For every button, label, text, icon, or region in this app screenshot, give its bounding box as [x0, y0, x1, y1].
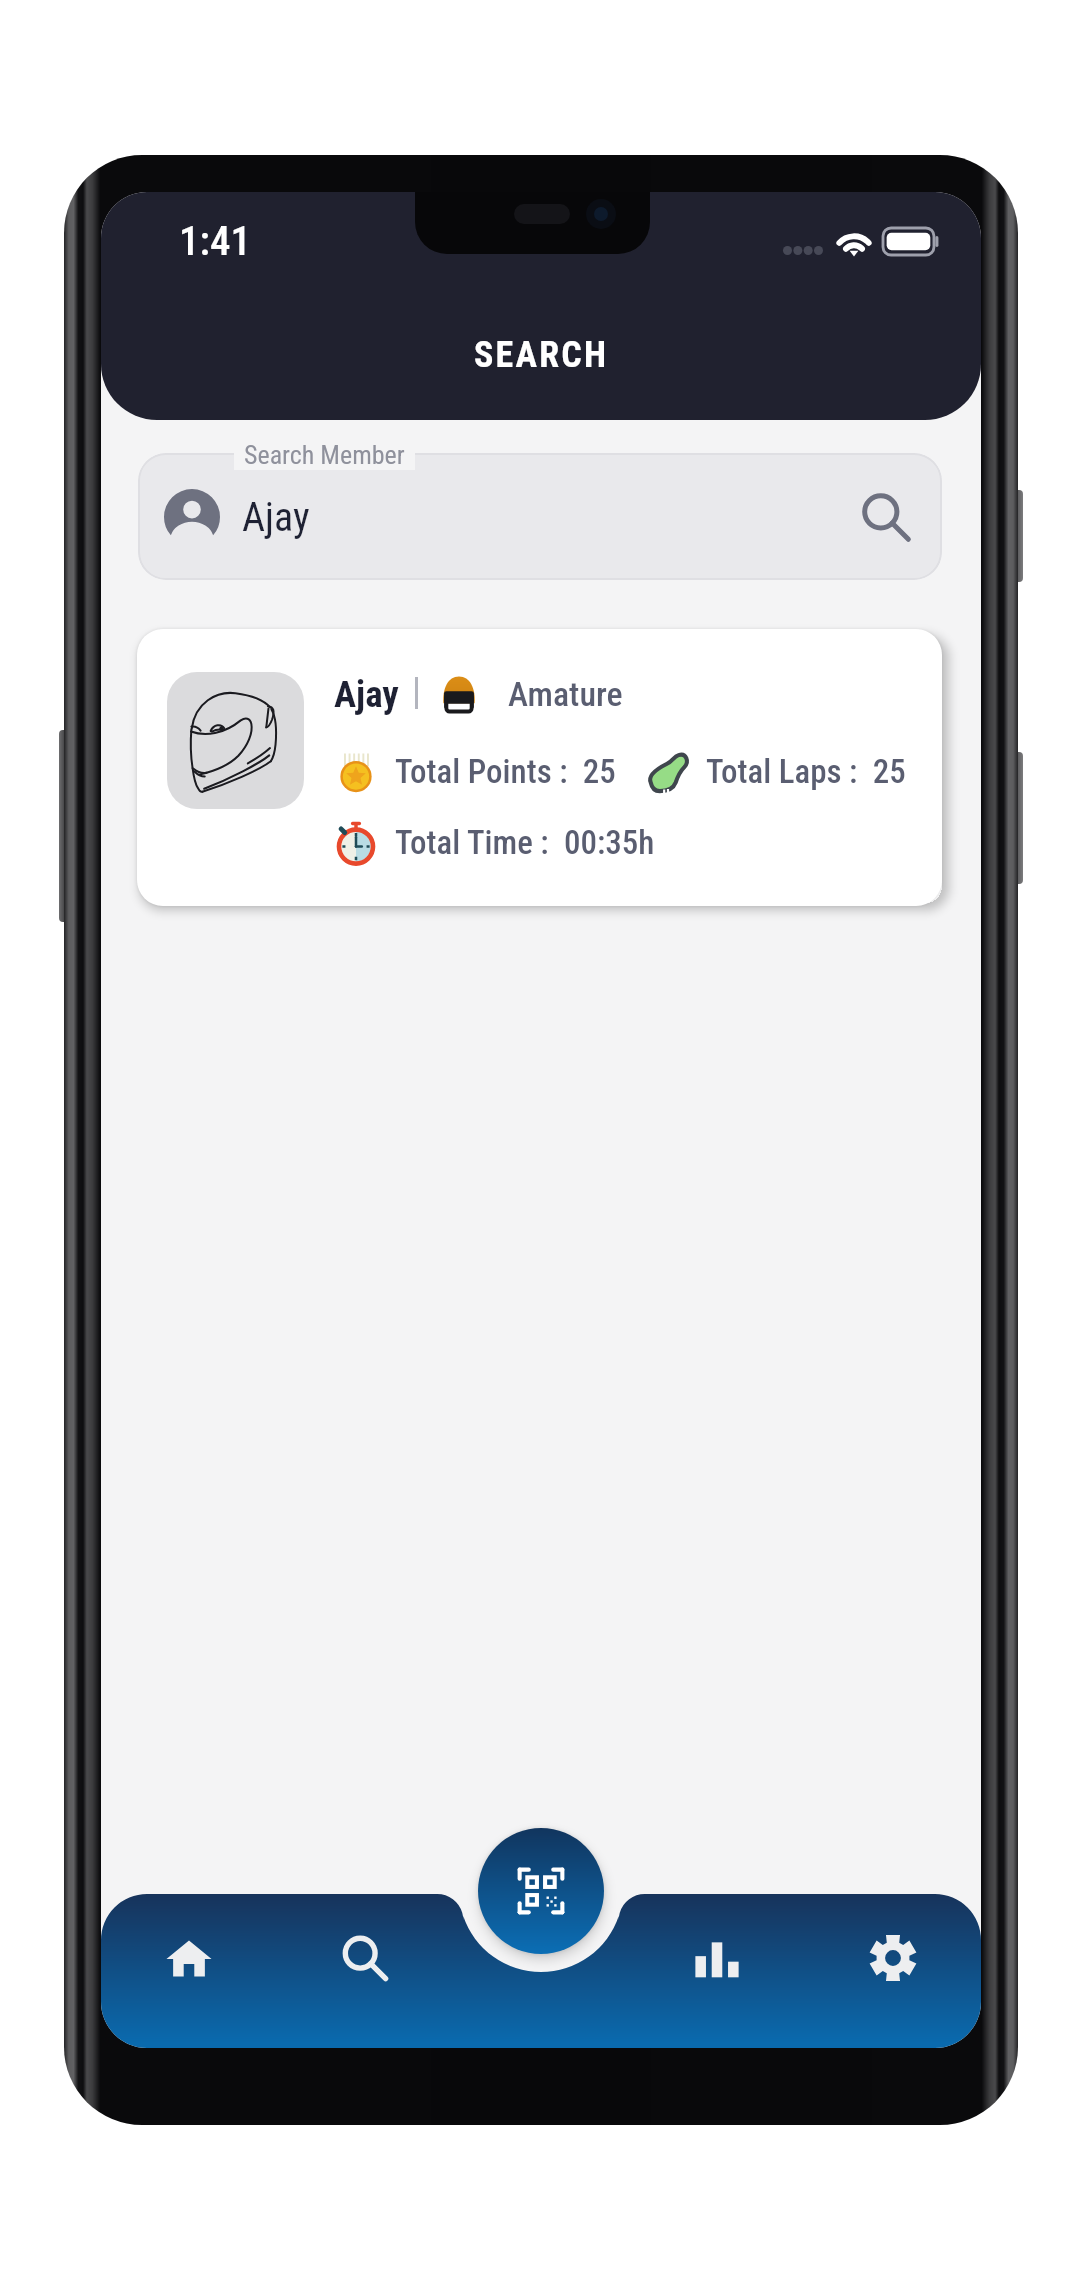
staticText: Total Laps : 25	[706, 752, 906, 791]
button[interactable]: Ajay	[138, 453, 942, 580]
staticText: Ajay	[334, 673, 399, 716]
staticText: Search Member	[244, 440, 405, 470]
button[interactable]: Search	[277, 1894, 453, 2022]
staticText: Total Time : 00:35h	[395, 823, 655, 862]
staticText: 1:41	[179, 217, 251, 265]
button[interactable]: Statistics	[629, 1894, 805, 2022]
staticText: SEARCH	[474, 334, 609, 376]
button[interactable]: Scan QR code	[478, 1828, 604, 1954]
button[interactable]: Settings	[805, 1894, 981, 2022]
button[interactable]: Home	[101, 1894, 277, 2022]
staticText: Amature	[508, 674, 623, 714]
staticText: Ajay	[242, 494, 310, 541]
button[interactable]: Ajay	[137, 629, 942, 906]
staticText: Total Points : 25	[395, 752, 616, 791]
